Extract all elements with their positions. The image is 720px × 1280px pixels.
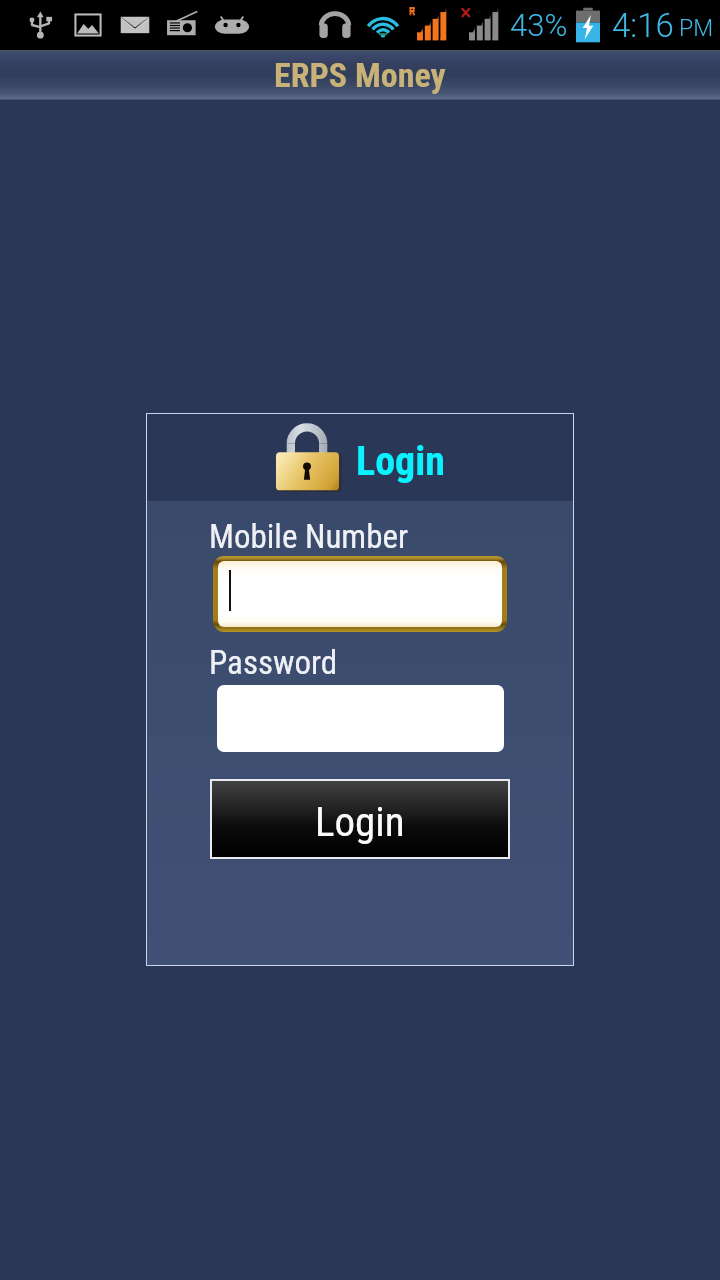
staticText: 43% [510,7,568,43]
staticText: PM [679,15,714,42]
staticText: Login [356,438,445,485]
staticText: 4:16 [612,6,674,45]
staticText: ERPS Money [274,55,446,95]
button[interactable]: Password input field [217,685,504,752]
button[interactable]: Mobile Number input field [218,561,502,627]
button[interactable]: Login [212,781,508,857]
staticText: Mobile Number [209,517,408,556]
staticText: Login [315,798,405,846]
staticText: Password [209,643,338,682]
